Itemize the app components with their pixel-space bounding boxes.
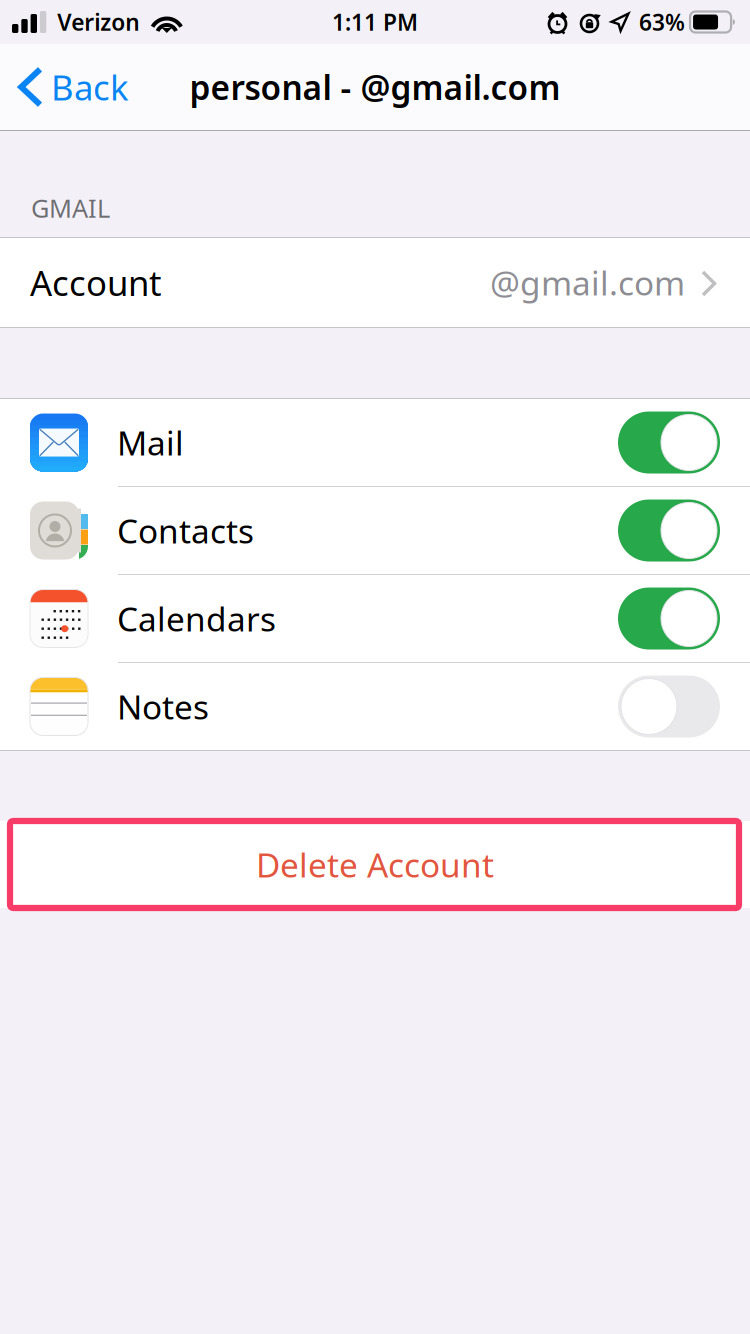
staticText: GMAIL <box>31 191 110 225</box>
staticText: 63% <box>639 7 685 37</box>
button[interactable]: Account <box>0 238 750 327</box>
button[interactable]: Calendars <box>0 575 750 662</box>
staticText: Verizon <box>57 7 139 37</box>
staticText: Contacts <box>117 508 254 553</box>
staticText: Calendars <box>117 596 276 641</box>
staticText: Back <box>51 64 129 110</box>
staticText: Notes <box>117 684 209 729</box>
button[interactable]: Back <box>0 44 143 130</box>
staticText: @gmail.com <box>490 260 685 305</box>
button[interactable]: Mail <box>0 399 750 486</box>
button[interactable]: Notes <box>0 663 750 750</box>
staticText: 1:11 PM <box>332 7 418 37</box>
staticText: Mail <box>117 420 184 465</box>
staticText: Account <box>30 259 162 305</box>
staticText: Delete Account <box>256 842 494 887</box>
staticText: personal - @gmail.com <box>189 65 560 109</box>
button[interactable]: Delete Account <box>0 821 750 908</box>
button[interactable]: Contacts <box>0 487 750 574</box>
